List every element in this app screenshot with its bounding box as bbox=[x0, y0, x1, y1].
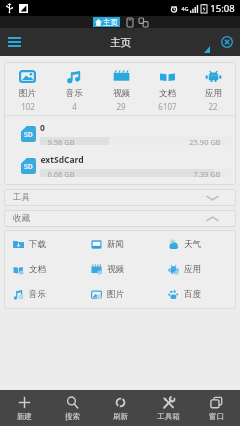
other: Phone storage bbox=[127, 18, 133, 27]
staticText: 4 bbox=[72, 101, 77, 112]
staticText: 音乐 bbox=[29, 289, 46, 300]
button[interactable]: Close bbox=[213, 28, 240, 56]
staticText: 视频 bbox=[113, 88, 130, 99]
button[interactable]: 工具箱 bbox=[144, 390, 192, 426]
staticText: 刷新 bbox=[113, 412, 128, 421]
button[interactable]: 工具 bbox=[4, 189, 236, 206]
staticText: 主页 bbox=[103, 18, 118, 27]
staticText: 新闻 bbox=[107, 239, 124, 250]
staticText: extSdCard bbox=[40, 154, 84, 166]
button[interactable]: 视频 bbox=[82, 257, 159, 282]
staticText: 下载 bbox=[29, 239, 46, 250]
staticText: 22 bbox=[208, 101, 218, 112]
staticText: 图片 bbox=[19, 88, 36, 99]
button[interactable]: 百度 bbox=[159, 282, 236, 307]
button[interactable]: 应用 bbox=[190, 62, 236, 115]
staticText: 主页 bbox=[110, 36, 131, 49]
button[interactable]: 收藏 bbox=[4, 210, 236, 227]
staticText: SD bbox=[24, 130, 33, 140]
button[interactable]: 刷新 bbox=[96, 390, 144, 426]
staticText: 6107 bbox=[158, 101, 177, 112]
button[interactable]: 下载 bbox=[4, 232, 82, 257]
button[interactable]: 新闻 bbox=[82, 232, 159, 257]
staticText: 百度 bbox=[184, 289, 201, 300]
staticText: 收藏 bbox=[13, 213, 30, 224]
staticText: 25.90 GB bbox=[189, 137, 221, 145]
staticText: 搜索 bbox=[65, 412, 80, 421]
staticText: 15:08 bbox=[210, 2, 235, 15]
staticText: 图片 bbox=[107, 289, 124, 300]
button[interactable]: 窗口 bbox=[192, 390, 240, 426]
staticText: 6.68 GB bbox=[47, 169, 75, 177]
staticText: 9.58 GB bbox=[47, 137, 75, 145]
button[interactable]: 文档 bbox=[144, 62, 190, 115]
staticText: 应用 bbox=[205, 88, 222, 99]
staticText: 应用 bbox=[184, 264, 201, 275]
staticText: 视频 bbox=[107, 264, 124, 275]
button[interactable]: 图片 bbox=[82, 282, 159, 307]
staticText: 窗口 bbox=[209, 412, 224, 421]
staticText: 0 bbox=[40, 122, 45, 134]
staticText: 文档 bbox=[159, 88, 176, 99]
button[interactable]: 视频 bbox=[98, 62, 144, 115]
staticText: 7.39 GB bbox=[193, 169, 221, 177]
button[interactable]: Menu bbox=[0, 28, 29, 56]
button[interactable]: 应用 bbox=[159, 257, 236, 282]
button[interactable]: 主页 bbox=[93, 17, 120, 27]
button[interactable]: 图片 bbox=[4, 62, 51, 115]
staticText: 4G bbox=[181, 5, 189, 12]
button[interactable]: 天气 bbox=[159, 232, 236, 257]
staticText: 29 bbox=[116, 101, 126, 112]
staticText: 文档 bbox=[29, 264, 46, 275]
button[interactable]: 新建 bbox=[0, 390, 48, 426]
button[interactable]: 音乐 bbox=[51, 62, 98, 115]
staticText: 102 bbox=[21, 101, 35, 112]
button[interactable]: 搜索 bbox=[48, 390, 96, 426]
staticText: 工具 bbox=[13, 192, 30, 203]
staticText: 新建 bbox=[17, 412, 32, 421]
staticText: SD bbox=[24, 162, 33, 172]
button[interactable]: 音乐 bbox=[4, 282, 82, 307]
button[interactable]: SD bbox=[4, 148, 236, 180]
button[interactable]: 文档 bbox=[4, 257, 82, 282]
staticText: 天气 bbox=[184, 239, 201, 250]
staticText: 工具箱 bbox=[157, 412, 180, 421]
other: Network bbox=[139, 18, 148, 27]
button[interactable]: SD bbox=[4, 116, 236, 148]
staticText: 音乐 bbox=[66, 88, 83, 99]
